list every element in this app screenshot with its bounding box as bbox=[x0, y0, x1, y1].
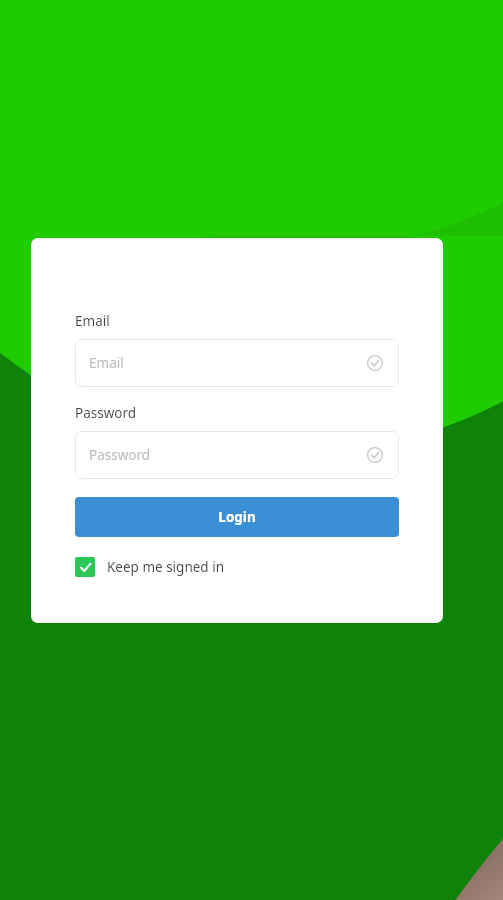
other: Validate Password bbox=[365, 445, 385, 465]
staticText: Email bbox=[75, 312, 110, 330]
button[interactable]: Login bbox=[75, 497, 399, 537]
staticText: Email bbox=[89, 354, 124, 372]
button[interactable]: Email bbox=[75, 339, 399, 387]
button[interactable]: Keep me signed in bbox=[75, 556, 224, 578]
other: Validate Email bbox=[365, 353, 385, 373]
staticText: Password bbox=[75, 404, 137, 422]
staticText: Keep me signed in bbox=[107, 558, 224, 576]
staticText: Password bbox=[89, 446, 151, 464]
staticText: Login bbox=[218, 508, 256, 526]
button[interactable]: Password bbox=[75, 431, 399, 479]
